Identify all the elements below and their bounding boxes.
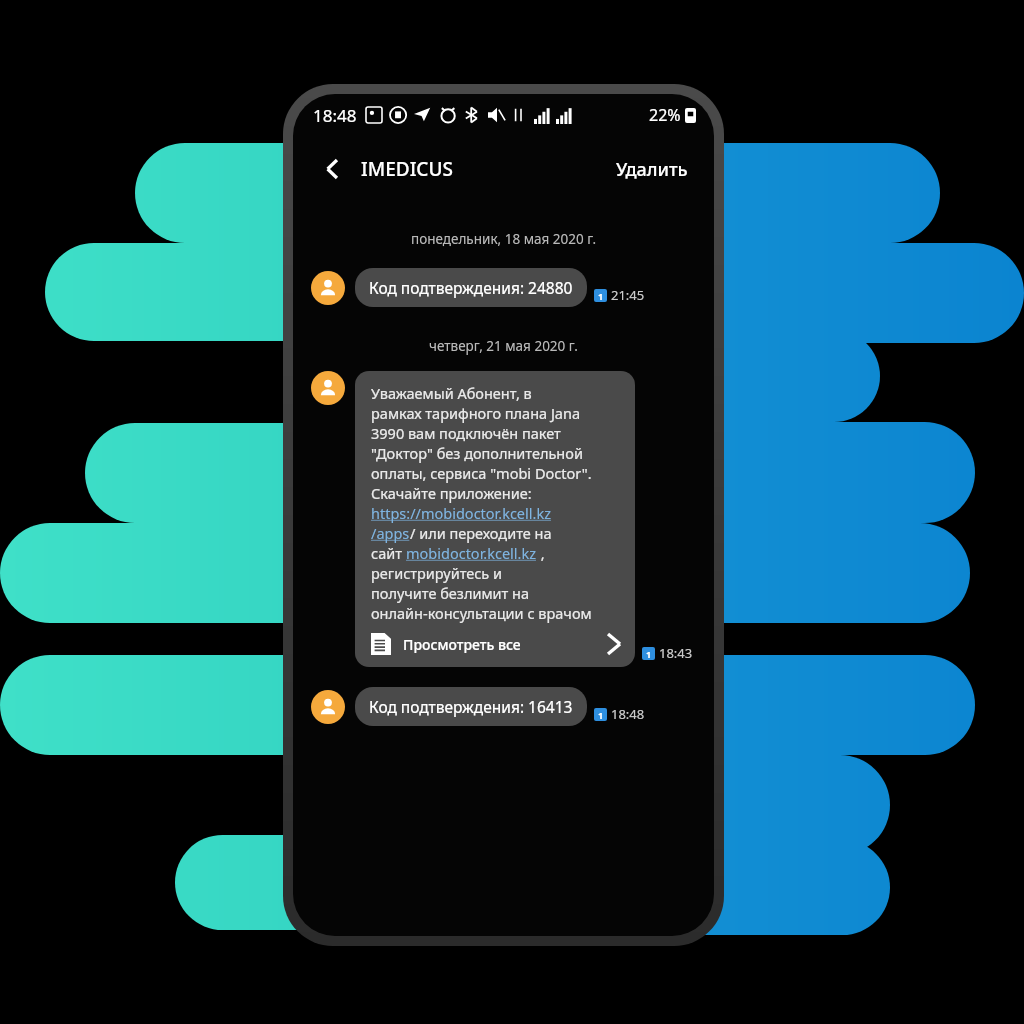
staticText: Скачайте приложение: (371, 483, 532, 503)
staticText: оплаты, сервиса "mobi Doctor". (371, 463, 592, 483)
staticText: получите безлимит на (371, 583, 530, 603)
staticText: Код подтверждения: 24880 (369, 277, 573, 298)
staticText: Уважаемый Абонент, в (371, 383, 532, 403)
staticText: /apps (371, 523, 410, 543)
staticText: регистрируйтесь и (371, 563, 503, 583)
staticText: 3990 вам подключён пакет (371, 423, 561, 443)
staticText: четверг, 21 мая 2020 г. (429, 337, 578, 355)
staticText: 18:48 (313, 104, 357, 127)
staticText: https://mobidoctor.kcell.kz (371, 503, 551, 523)
staticText: Код подтверждения: 16413 (369, 696, 573, 717)
staticText: 1 (598, 709, 604, 721)
button[interactable]: Уважаемый Абонент, в (355, 371, 635, 667)
button[interactable]: Back (313, 149, 353, 189)
staticText: mobidoctor.kcell.kz (406, 543, 537, 563)
staticText: / или переходите на (410, 523, 552, 543)
staticText: Просмотреть все (403, 635, 521, 654)
staticText: Удалить (616, 157, 688, 182)
staticText: сайт (371, 543, 406, 563)
button[interactable]: Код подтверждения: 24880 (355, 268, 587, 307)
button[interactable]: IMEDICUS (361, 156, 453, 182)
staticText: понедельник, 18 мая 2020 г. (411, 230, 597, 248)
staticText: 18:48 (611, 705, 645, 723)
button[interactable]: Код подтверждения: 16413 (355, 687, 587, 726)
button[interactable]: Удалить (610, 151, 694, 188)
staticText: , (537, 543, 545, 563)
staticText: 18:43 (659, 644, 693, 662)
staticText: IMEDICUS (361, 156, 453, 182)
staticText: рамках тарифного плана Jana (371, 403, 581, 423)
staticText: 1 (598, 290, 604, 302)
staticText: онлайн-консультации с врачом (371, 603, 592, 623)
staticText: 21:45 (611, 286, 645, 304)
staticText: 1 (646, 648, 652, 660)
button[interactable]: Просмотреть все (355, 629, 635, 667)
staticText: 22% (649, 104, 681, 126)
staticText: "Доктор" без дополнительной (371, 443, 583, 463)
